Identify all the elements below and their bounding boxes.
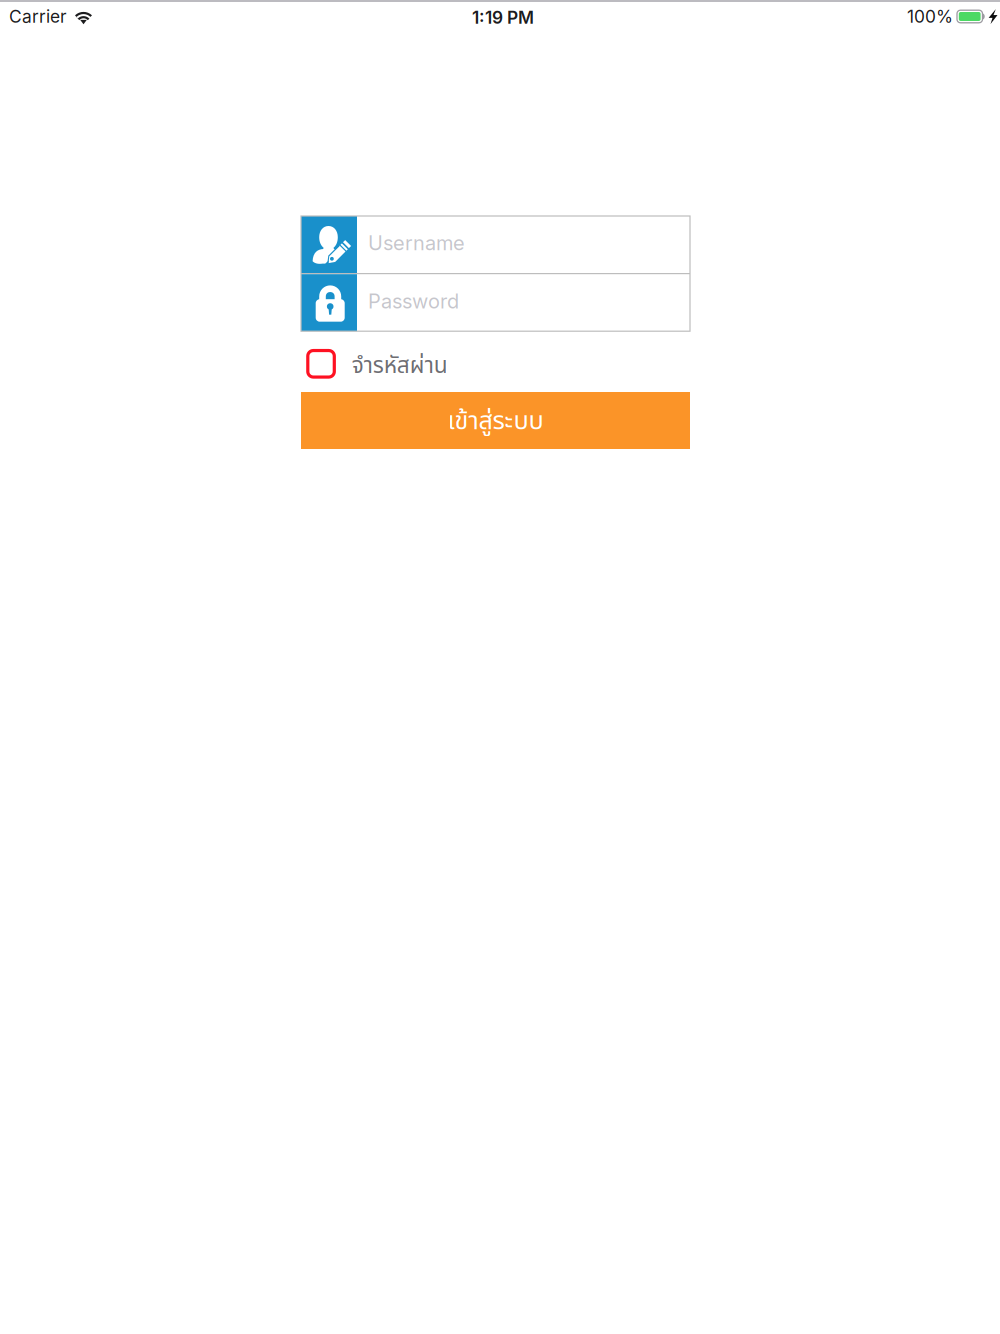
staticText: Password: [368, 289, 459, 313]
button[interactable]: Password: [301, 274, 690, 331]
button[interactable]: เข้าสู่ระบบ: [301, 392, 690, 449]
staticText: Carrier: [9, 6, 67, 27]
staticText: 100%: [907, 6, 953, 27]
staticText: 1:19 PM: [472, 7, 534, 28]
button[interactable]: Username: [301, 216, 690, 273]
staticText: จำรหัสผ่าน: [352, 349, 448, 383]
staticText: Username: [368, 231, 465, 255]
staticText: เข้าสู่ระบบ: [447, 402, 543, 441]
button[interactable]: จำรหัสผ่าน: [308, 347, 508, 381]
